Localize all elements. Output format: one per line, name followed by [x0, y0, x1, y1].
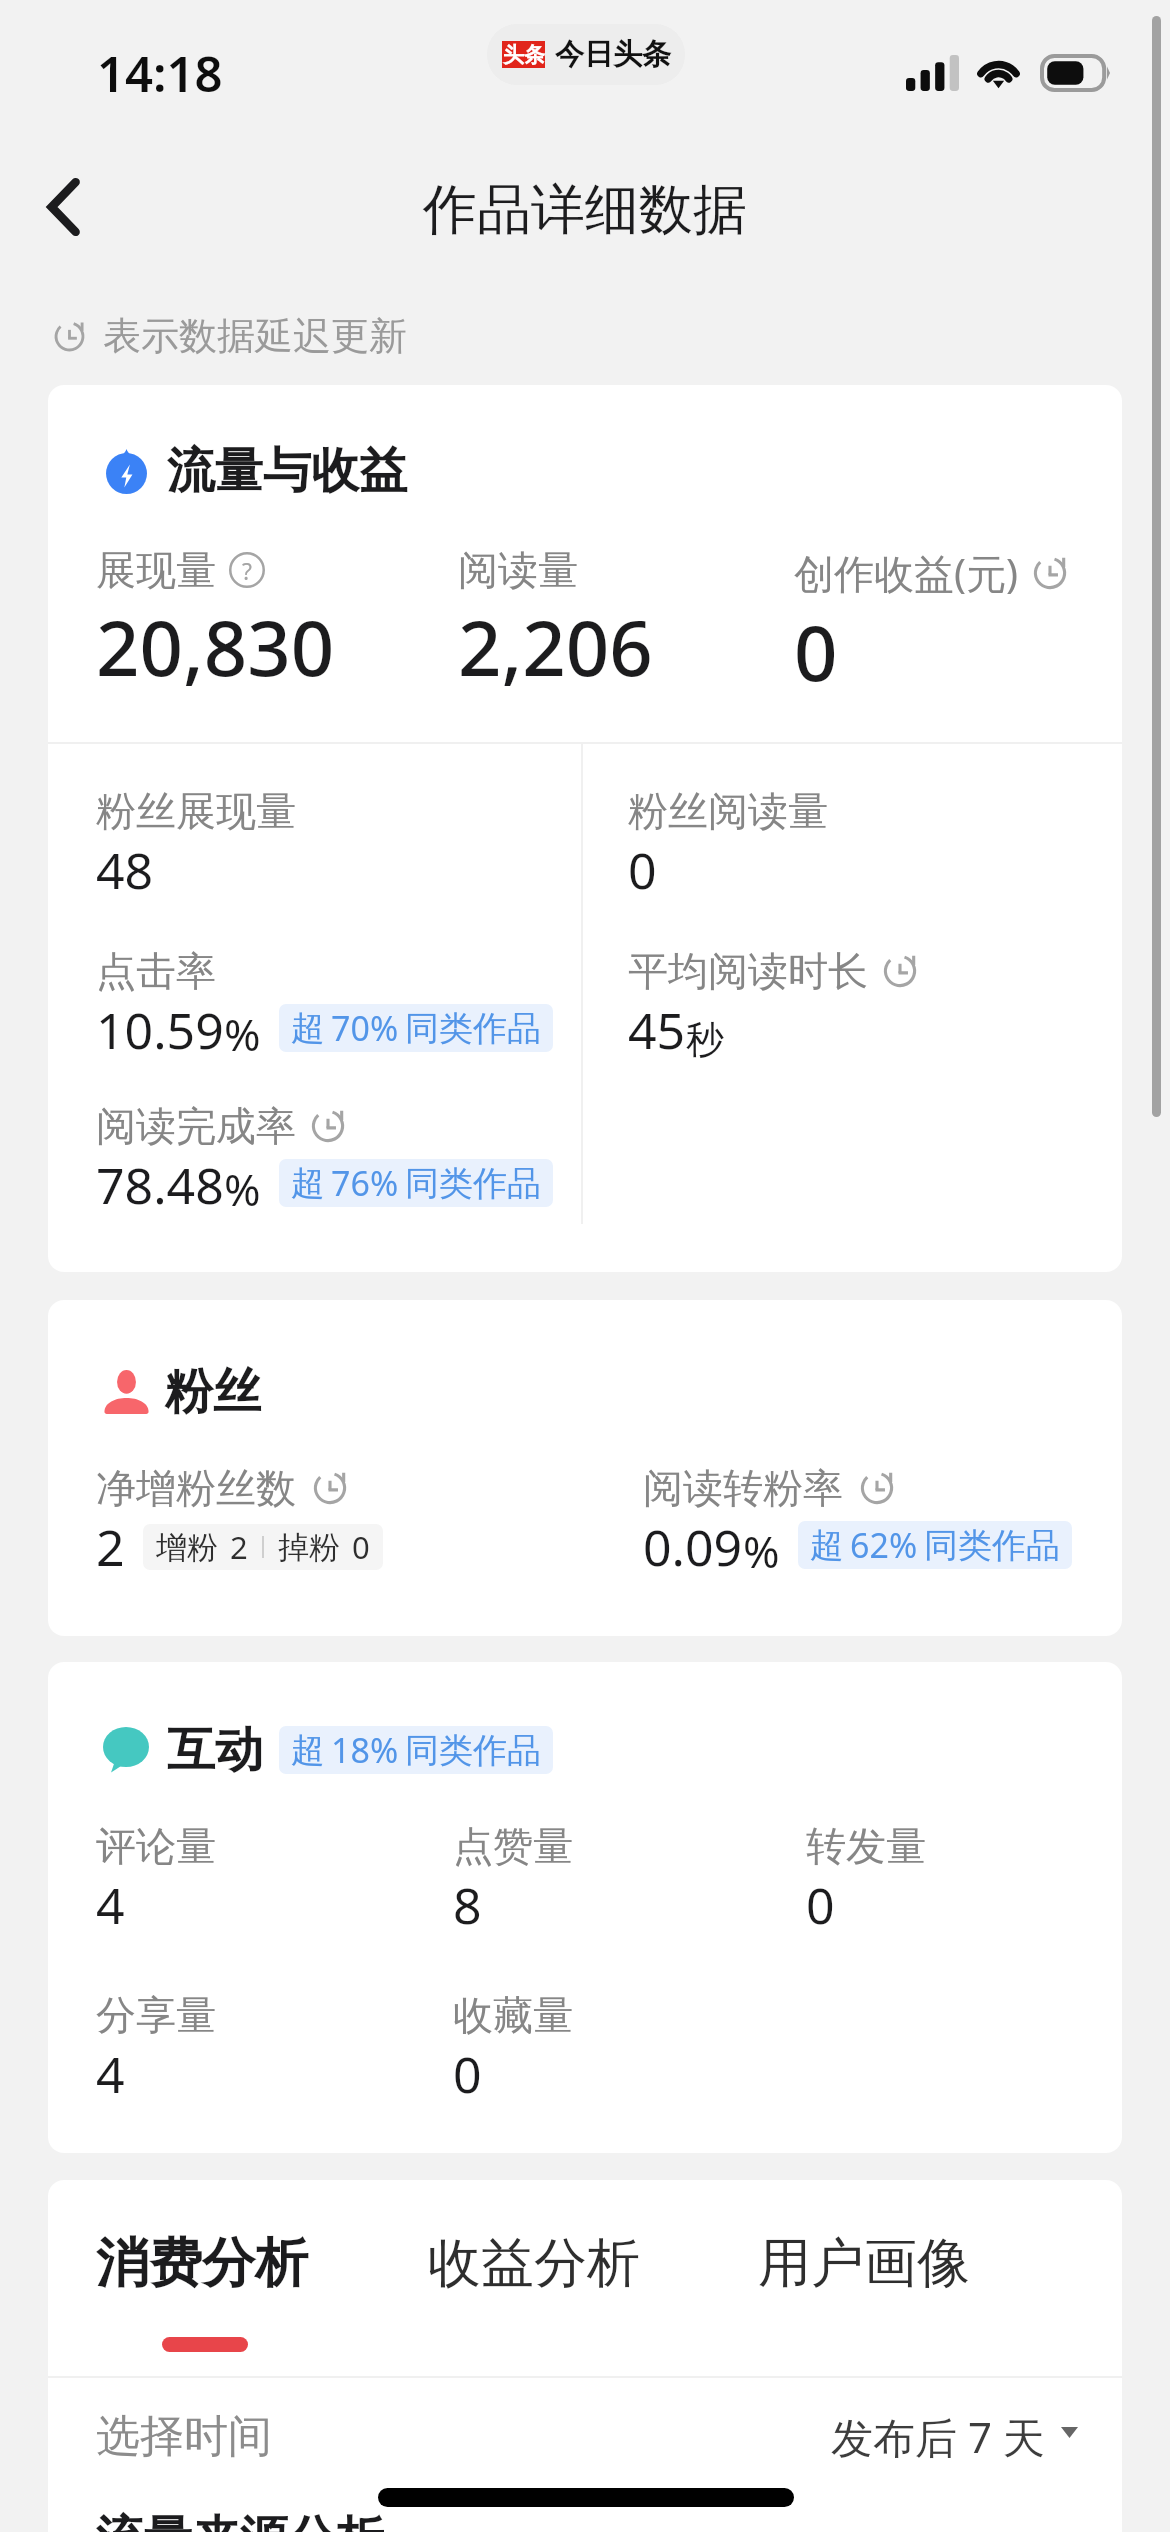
button[interactable]: More info — [229, 552, 265, 588]
staticText: 0 — [352, 1526, 370, 1568]
staticText: 20,830 — [96, 595, 335, 699]
staticText: 选择时间 — [96, 2409, 272, 2464]
staticText: 发布后 7 天 — [831, 2408, 1045, 2465]
staticText: 78.48 — [96, 1151, 224, 1219]
staticText: 秒 — [686, 1016, 724, 1064]
button[interactable]: 用户画像 — [758, 2230, 970, 2297]
staticText: 超 — [291, 1162, 325, 1205]
button[interactable]: 展现量 — [96, 545, 458, 699]
staticText: 互动 — [167, 1720, 263, 1780]
staticText: 粉丝 — [165, 1362, 261, 1422]
staticText: 同类作品 — [405, 1729, 541, 1772]
staticText: 今日头条 — [555, 36, 671, 73]
staticText: 转发量 — [806, 1821, 926, 1871]
staticText: 0 — [453, 2040, 482, 2108]
staticText: 超 — [810, 1524, 844, 1567]
staticText: 同类作品 — [405, 1162, 541, 1205]
staticText: 4 — [96, 2040, 125, 2108]
button[interactable]: 创作收益(元) — [794, 545, 1069, 704]
button[interactable]: Back — [8, 152, 118, 262]
staticText: 超 — [291, 1007, 325, 1050]
staticText: 0.09 — [643, 1513, 743, 1581]
staticText: 掉粉 — [278, 1528, 340, 1567]
staticText: 62% — [850, 1522, 918, 1568]
staticText: 0 — [628, 836, 657, 904]
staticText: 消费分析 — [96, 2230, 308, 2297]
staticText: 4 — [96, 1871, 125, 1939]
staticText: 表示数据延迟更新 — [103, 312, 407, 360]
staticText: 评论量 — [96, 1821, 216, 1871]
staticText: 阅读转粉率 — [643, 1463, 843, 1513]
staticText: 流量来源分析 — [96, 2509, 384, 2532]
staticText: 2 — [230, 1526, 248, 1568]
staticText: 净增粉丝数 — [96, 1463, 296, 1513]
button[interactable]: 发布后 7 天 — [831, 2408, 1078, 2465]
staticText: % — [743, 1521, 780, 1581]
staticText: 14:18 — [97, 40, 223, 107]
staticText: 10.59 — [96, 996, 224, 1064]
staticText: 8 — [453, 1871, 482, 1939]
staticText: 收藏量 — [453, 1990, 573, 2040]
button[interactable]: 阅读量 — [458, 545, 794, 699]
staticText: 头条 — [503, 42, 545, 68]
staticText: % — [224, 1159, 261, 1219]
staticText: 超 — [291, 1729, 325, 1772]
staticText: 18% — [331, 1727, 399, 1773]
staticText: 粉丝阅读量 — [628, 786, 828, 836]
staticText: 48 — [96, 836, 154, 904]
staticText: 收益分析 — [428, 2230, 640, 2297]
staticText: 45 — [628, 996, 686, 1064]
staticText: 阅读完成率 — [96, 1101, 296, 1151]
button[interactable]: 消费分析 — [96, 2230, 428, 2352]
staticText: 流量与收益 — [167, 441, 407, 501]
staticText: 同类作品 — [924, 1524, 1060, 1567]
staticText: 用户画像 — [758, 2230, 970, 2297]
staticText: 粉丝展现量 — [96, 786, 296, 836]
staticText: 同类作品 — [405, 1007, 541, 1050]
staticText: % — [224, 1004, 261, 1064]
staticText: ? — [242, 555, 252, 586]
staticText: 平均阅读时长 — [628, 946, 868, 996]
staticText: 展现量 — [96, 545, 216, 595]
button[interactable]: 收益分析 — [428, 2230, 758, 2297]
staticText: 0 — [806, 1871, 835, 1939]
staticText: 分享量 — [96, 1990, 216, 2040]
staticText: 2 — [96, 1513, 125, 1581]
staticText: 增粉 — [156, 1528, 218, 1567]
staticText: 阅读量 — [458, 545, 578, 595]
staticText: 76% — [331, 1160, 399, 1206]
staticText: 2,206 — [458, 595, 653, 699]
staticText: 作品详细数据 — [423, 176, 747, 244]
staticText: 70% — [331, 1005, 399, 1051]
staticText: 创作收益(元) — [794, 545, 1018, 600]
staticText: 0 — [794, 600, 838, 704]
staticText: 点赞量 — [453, 1821, 573, 1871]
staticText: 点击率 — [96, 946, 216, 996]
